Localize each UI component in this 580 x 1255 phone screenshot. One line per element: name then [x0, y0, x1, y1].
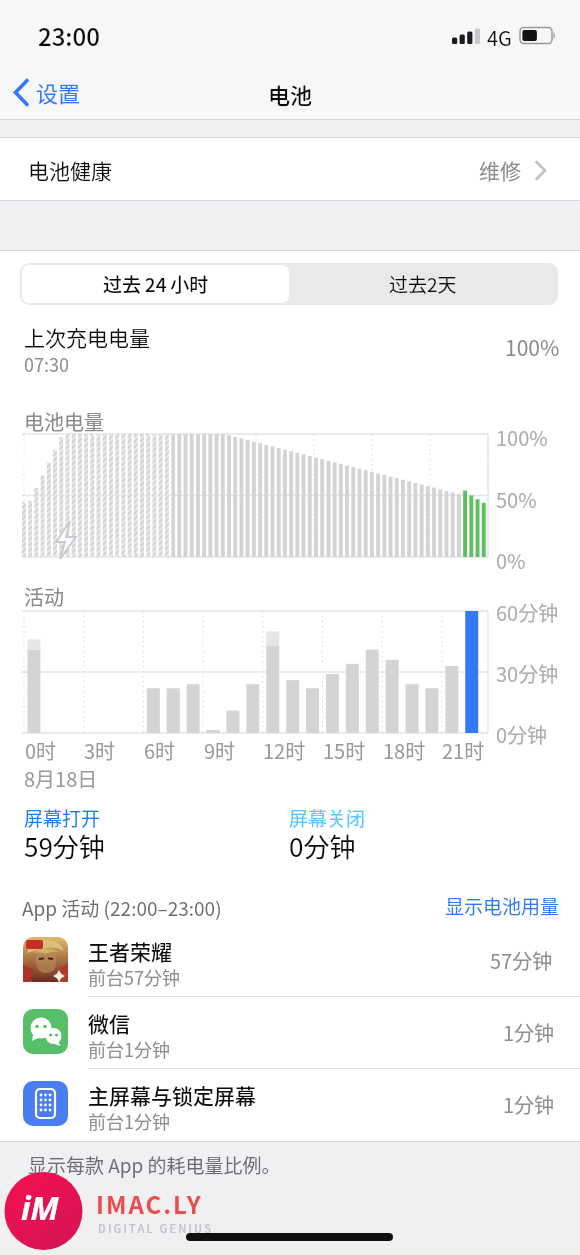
staticText: 3时 — [84, 736, 116, 765]
staticText: 上次充电电量 — [24, 322, 150, 352]
staticText: 活动 — [24, 582, 64, 611]
staticText: 0% — [496, 546, 526, 575]
button[interactable]: 电池健康 — [0, 138, 580, 200]
button[interactable]: 显示电池用量 — [420, 890, 560, 922]
staticText: 15时 — [323, 736, 366, 765]
button[interactable]: 过去2天 — [289, 265, 556, 303]
staticText: 9时 — [204, 736, 236, 765]
staticText: iM — [21, 1186, 59, 1230]
button[interactable]: 主屏幕与锁定屏幕 — [0, 1069, 580, 1141]
button[interactable]: 设置 — [10, 74, 110, 114]
staticText: IMAC.LY — [96, 1186, 203, 1221]
staticText: 屏幕打开 — [24, 804, 101, 832]
staticText: 0分钟 — [289, 827, 356, 865]
staticText: 主屏幕与锁定屏幕 — [88, 1080, 256, 1110]
button[interactable]: 过去 24 小时 — [22, 265, 289, 303]
staticText: 07:30 — [24, 351, 69, 377]
staticText: 王者荣耀 — [88, 936, 172, 966]
staticText: 电池电量 — [24, 407, 104, 436]
staticText: 57分钟 — [490, 946, 553, 975]
staticText: 30分钟 — [496, 659, 559, 688]
staticText: 前台57分钟 — [88, 964, 180, 990]
staticText: 维修 — [479, 155, 521, 185]
staticText: 屏幕关闭 — [289, 804, 366, 832]
staticText: DIGITAL GENIUS — [98, 1220, 214, 1236]
staticText: 电池健康 — [28, 155, 112, 185]
staticText: 100% — [496, 423, 548, 452]
button[interactable]: 微信 — [0, 997, 580, 1069]
staticText: 过去2天 — [389, 270, 457, 298]
staticText: 12时 — [263, 736, 306, 765]
staticText: 23:00 — [38, 18, 100, 53]
staticText: 电池 — [268, 78, 313, 110]
staticText: 设置 — [36, 76, 81, 108]
staticText: 前台1分钟 — [88, 1108, 170, 1134]
staticText: 显示每款 App 的耗电量比例。 — [28, 1151, 281, 1179]
button[interactable]: 王者荣耀 — [0, 925, 580, 997]
staticText: 100% — [505, 332, 560, 362]
staticText: 6时 — [144, 736, 176, 765]
staticText: 1分钟 — [503, 1090, 555, 1119]
staticText: 1分钟 — [503, 1018, 555, 1047]
staticText: 微信 — [88, 1008, 130, 1038]
staticText: 60分钟 — [496, 598, 559, 627]
staticText: 4G — [487, 23, 512, 52]
staticText: 59分钟 — [24, 827, 105, 865]
staticText: 0分钟 — [496, 720, 548, 749]
staticText: 前台1分钟 — [88, 1036, 170, 1062]
staticText: App 活动 (22:00–23:00) — [22, 894, 222, 922]
staticText: 0时 — [25, 736, 57, 765]
staticText: 50% — [496, 485, 537, 514]
staticText: 显示电池用量 — [445, 892, 560, 920]
staticText: 8月18日 — [24, 764, 98, 793]
staticText: 21时 — [442, 736, 485, 765]
staticText: 18时 — [383, 736, 426, 765]
staticText: 过去 24 小时 — [103, 270, 209, 298]
